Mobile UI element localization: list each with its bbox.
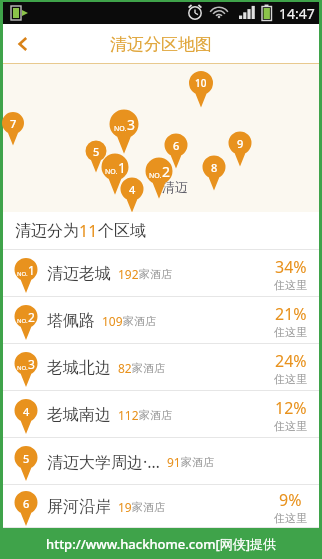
staticText: 9% — [279, 489, 302, 511]
button[interactable]: Area 10 — [189, 71, 213, 95]
button[interactable]: Area 8 — [203, 156, 226, 179]
staticText: 屏河沿岸 — [47, 497, 111, 517]
staticText: NO. — [149, 171, 162, 181]
staticText: 10 — [195, 76, 207, 90]
staticText: 老城北边 — [47, 358, 111, 378]
staticText: 5 — [23, 451, 30, 466]
staticText: 8 — [211, 160, 218, 175]
staticText: 个区域 — [98, 221, 146, 241]
button[interactable]: 6 — [3, 485, 319, 528]
staticText: 4 — [129, 182, 136, 197]
staticText: 3 — [28, 356, 35, 372]
staticText: 2 — [28, 309, 35, 325]
staticText: 3 — [127, 115, 136, 134]
button[interactable]: Back — [3, 24, 43, 64]
staticText: 清迈分区地图 — [110, 34, 212, 55]
button[interactable]: Area NO.2 — [146, 158, 173, 185]
staticText: 24% — [275, 350, 307, 372]
button[interactable]: Area 5 — [86, 141, 107, 162]
staticText: 9 — [237, 136, 244, 151]
staticText: 老城南边 — [47, 405, 111, 425]
staticText: 6 — [173, 138, 180, 153]
staticText: NO. — [17, 317, 28, 325]
button[interactable]: Area 7 — [2, 112, 24, 134]
button[interactable]: Area NO.1 — [102, 154, 129, 181]
button[interactable]: 5 — [3, 438, 319, 485]
staticText: 11 — [79, 220, 98, 242]
staticText: 塔佩路 — [47, 311, 95, 331]
staticText: 1 — [28, 262, 35, 278]
staticText: 4 — [23, 404, 30, 419]
staticText: 家酒店 — [181, 455, 214, 469]
staticText: NO. — [17, 364, 28, 372]
button[interactable]: Area 9 — [229, 132, 252, 155]
staticText: 19 — [118, 499, 132, 515]
button[interactable]: 4 — [3, 391, 319, 438]
staticText: 1 — [118, 158, 127, 177]
staticText: 住这里 — [274, 278, 307, 292]
staticText: 6 — [23, 496, 30, 511]
button[interactable]: NO. — [3, 297, 319, 344]
staticText: 住这里 — [274, 419, 307, 433]
staticText: 5 — [93, 144, 100, 159]
staticText: 109 — [102, 313, 123, 329]
staticText: 34% — [275, 256, 307, 278]
staticText: 家酒店 — [132, 361, 165, 375]
staticText: http://www.hackhome.com[网侠]提供 — [46, 535, 277, 553]
staticText: 82 — [118, 360, 132, 376]
staticText: NO. — [105, 167, 118, 177]
staticText: 住这里 — [274, 372, 307, 386]
button[interactable]: Area NO.3 — [110, 110, 139, 139]
staticText: 家酒店 — [132, 500, 165, 514]
staticText: 住这里 — [274, 511, 307, 525]
staticText: 14:47 — [279, 4, 315, 23]
staticText: 家酒店 — [139, 408, 172, 422]
staticText: 91 — [167, 454, 181, 470]
staticText: 住这里 — [274, 325, 307, 339]
staticText: 清迈 — [162, 179, 188, 195]
button[interactable]: NO. — [3, 344, 319, 391]
staticText: 192 — [118, 266, 139, 282]
staticText: 家酒店 — [139, 267, 172, 281]
staticText: 12% — [275, 397, 307, 419]
button[interactable]: Area 6 — [165, 134, 188, 157]
staticText: 2 — [162, 162, 171, 181]
staticText: 21% — [275, 303, 307, 325]
button[interactable]: NO. — [3, 250, 319, 297]
button[interactable]: Area 4 — [121, 178, 144, 201]
staticText: 清迈老城 — [47, 264, 111, 284]
staticText: NO. — [17, 270, 28, 278]
staticText: 清迈分为 — [15, 221, 79, 241]
staticText: 清迈大学周边·… — [47, 451, 160, 473]
staticText: NO. — [114, 124, 127, 134]
staticText: 112 — [118, 407, 139, 423]
staticText: 家酒店 — [123, 314, 156, 328]
staticText: 7 — [10, 116, 17, 131]
